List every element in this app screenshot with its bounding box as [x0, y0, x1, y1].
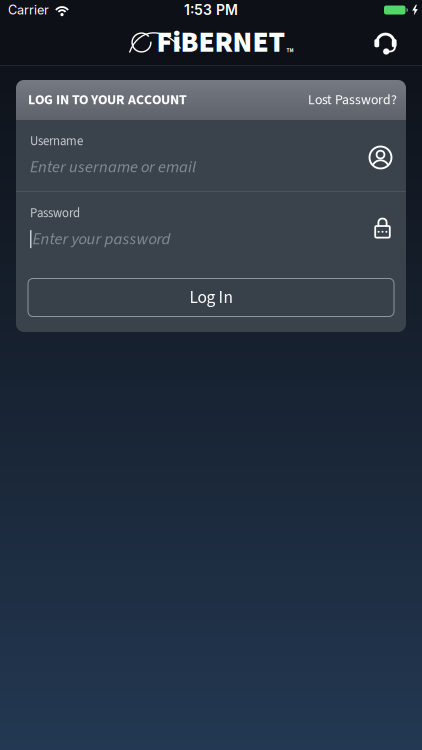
staticText: Lost Password?: [308, 90, 397, 110]
staticText: Enter your password: [32, 227, 170, 251]
button[interactable]: Lost Password?: [308, 80, 397, 120]
staticText: FiBERNET: [156, 22, 285, 63]
button[interactable]: Username: [16, 120, 406, 191]
button[interactable]: Log In: [28, 278, 394, 316]
staticText: Password: [30, 204, 80, 222]
staticText: Carrier: [8, 2, 49, 18]
button[interactable]: Support: [374, 20, 422, 64]
staticText: Log In: [189, 285, 232, 310]
button[interactable]: Password: [16, 192, 406, 263]
staticText: 1:53 PM: [184, 1, 238, 18]
staticText: TM: [286, 47, 293, 54]
staticText: Enter username or email: [30, 155, 196, 179]
staticText: Username: [30, 132, 83, 150]
staticText: LOG IN TO YOUR ACCOUNT: [28, 90, 187, 110]
